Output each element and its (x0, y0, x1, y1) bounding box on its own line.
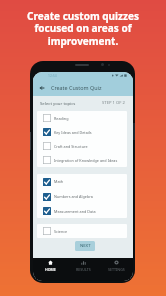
button[interactable]: NEXT (75, 241, 95, 251)
staticText: Craft and Structure (54, 144, 88, 149)
button[interactable]: Craft and Structure (43, 139, 123, 153)
staticText: Numbers and Algebra (54, 194, 93, 199)
staticText: Measurement and Data (54, 209, 96, 214)
button[interactable]: Integration of Knowledge and Ideas (43, 153, 123, 167)
button[interactable]: Numbers and Algebra (43, 189, 123, 204)
button[interactable]: SETTINGS (100, 258, 133, 281)
button[interactable]: HOME (33, 258, 67, 281)
staticText: Science (54, 229, 68, 234)
staticText: Math (54, 179, 64, 184)
staticText: Integration of Knowledge and Ideas (54, 158, 118, 163)
staticText: Create custom quizzes focused on areas o… (0, 9, 166, 48)
button[interactable]: Back (37, 83, 46, 92)
staticText: SETTINGS (108, 267, 125, 272)
staticText: Reading (54, 116, 69, 121)
staticText: 12:54 (48, 73, 57, 78)
staticText: NEXT (80, 243, 91, 249)
button[interactable]: Reading (43, 111, 123, 125)
staticText: STEP 1 OF 2 (102, 100, 125, 106)
staticText: RESULTS (76, 267, 91, 272)
staticText: HOME (45, 267, 56, 272)
button[interactable]: Key Ideas and Details (43, 125, 123, 139)
staticText: Key Ideas and Details (54, 130, 92, 135)
button[interactable]: RESULTS (67, 258, 100, 281)
button[interactable]: Measurement and Data (43, 204, 123, 218)
button[interactable]: Science (43, 224, 123, 238)
staticText: Create Custom Quiz (51, 84, 102, 91)
staticText: Select your topics (40, 100, 76, 106)
button[interactable]: Math (43, 174, 123, 189)
